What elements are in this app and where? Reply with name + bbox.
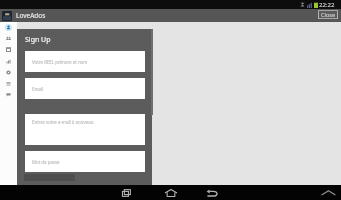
button[interactable]: Chat [0, 56, 17, 67]
staticText: 22:22 [319, 1, 335, 9]
staticText: Votre REEL prénom et nom [32, 59, 88, 65]
button[interactable]: Close [318, 10, 338, 19]
button[interactable]: Recent apps [119, 186, 135, 199]
staticText: Email [32, 86, 44, 92]
button[interactable]: Settings [0, 67, 17, 78]
button[interactable]: Votre REEL prénom et nom [25, 51, 145, 72]
button[interactable]: Feed [0, 78, 17, 89]
staticText: Sign Up [25, 35, 51, 45]
button[interactable]: Photos [0, 44, 17, 55]
button[interactable]: Mot de passe [25, 151, 145, 172]
button[interactable]: App icon [2, 11, 12, 21]
button[interactable]: App icon [0, 9, 341, 22]
button[interactable]: Entrez votre e-mail à nouveau [25, 114, 145, 145]
button[interactable]: Email [25, 78, 145, 99]
button[interactable]: Expand status bar [320, 187, 336, 198]
button[interactable]: Groups [0, 33, 17, 44]
button[interactable]: Back [204, 186, 220, 199]
staticText: Mot de passe [32, 159, 60, 165]
staticText: LoveAdos [16, 11, 46, 20]
staticText: Close [321, 11, 335, 18]
button[interactable]: Home [163, 186, 179, 199]
button[interactable]: Home [0, 22, 17, 33]
button[interactable]: More [0, 89, 17, 100]
staticText: Entrez votre e-mail à nouveau [32, 119, 94, 125]
